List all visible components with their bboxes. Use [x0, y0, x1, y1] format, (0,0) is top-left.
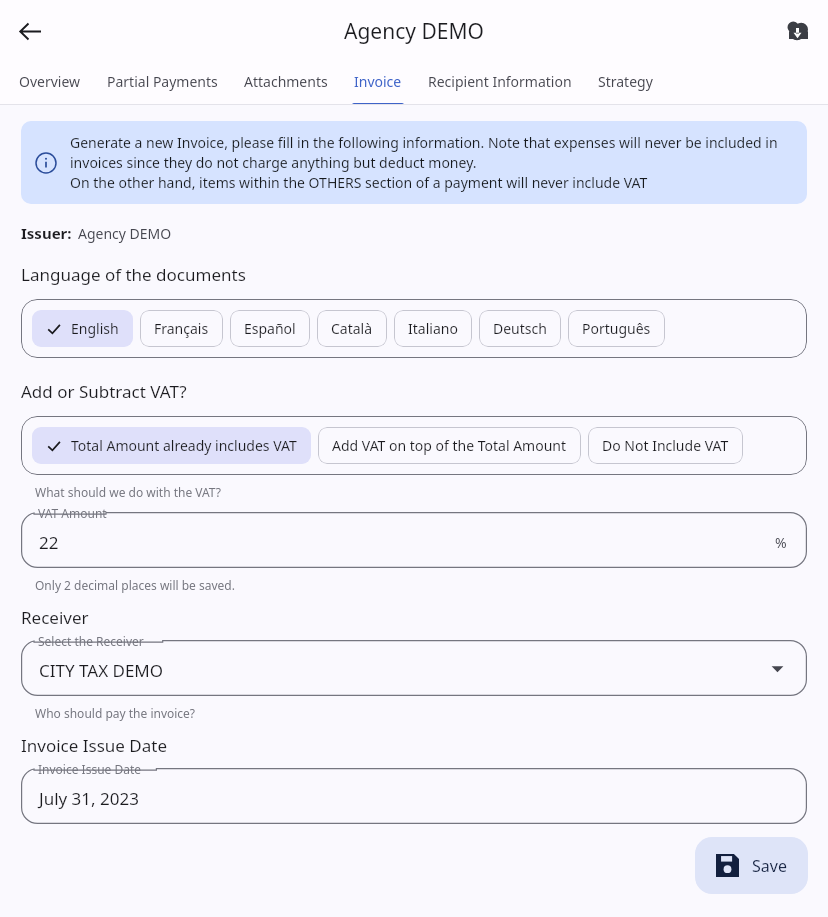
button[interactable]: Recipient Information: [415, 62, 585, 105]
staticText: Invoice Issue Date: [21, 734, 167, 757]
staticText: Recipient Information: [428, 72, 572, 91]
staticText: %: [775, 533, 787, 552]
staticText: Português: [582, 319, 651, 338]
staticText: Who should pay the invoice?: [35, 705, 196, 721]
staticText: Receiver: [21, 606, 89, 629]
button[interactable]: Deutsch: [479, 310, 561, 347]
staticText: Language of the documents: [21, 263, 246, 286]
button[interactable]: Italiano: [394, 310, 472, 347]
button[interactable]: Open dropdown: [762, 653, 792, 683]
button[interactable]: Save: [695, 837, 808, 894]
staticText: Add VAT on top of the Total Amount: [332, 436, 567, 455]
staticText: English: [71, 319, 119, 338]
button[interactable]: Overview: [6, 62, 94, 105]
button[interactable]: Invoice: [341, 62, 415, 105]
staticText: Issuer:: [21, 223, 72, 243]
staticText: Deutsch: [493, 319, 547, 338]
staticText: Only 2 decimal places will be saved.: [35, 577, 235, 593]
staticText: Español: [244, 319, 296, 338]
button[interactable]: Français: [140, 310, 223, 347]
staticText: Agency DEMO: [344, 17, 484, 46]
button[interactable]: Back: [6, 7, 54, 55]
button[interactable]: English: [32, 310, 133, 347]
staticText: July 31, 2023: [39, 787, 139, 810]
staticText: Overview: [19, 72, 81, 91]
staticText: Français: [154, 319, 209, 338]
staticText: Partial Payments: [107, 72, 218, 91]
staticText: 22: [39, 531, 59, 554]
staticText: Total Amount already includes VAT: [71, 436, 297, 455]
staticText: Attachments: [244, 72, 328, 91]
staticText: What should we do with the VAT?: [35, 484, 221, 500]
button[interactable]: Español: [230, 310, 310, 347]
staticText: Select the Receiver: [38, 633, 144, 649]
button[interactable]: Strategy: [585, 62, 666, 105]
staticText: Strategy: [598, 72, 653, 91]
staticText: Save: [752, 855, 787, 877]
staticText: Do Not Include VAT: [602, 436, 729, 455]
button[interactable]: Português: [568, 310, 665, 347]
button[interactable]: Add VAT on top of the Total Amount: [318, 427, 581, 464]
button[interactable]: Total Amount already includes VAT: [32, 427, 311, 464]
staticText: Add or Subtract VAT?: [21, 380, 187, 403]
button[interactable]: Download: [773, 7, 821, 55]
staticText: Generate a new Invoice, please fill in t…: [70, 133, 791, 192]
staticText: CITY TAX DEMO: [39, 659, 164, 682]
staticText: VAT Amount: [38, 505, 107, 521]
staticText: Invoice Issue Date: [38, 761, 142, 777]
button[interactable]: Attachments: [231, 62, 341, 105]
button[interactable]: Català: [317, 310, 387, 347]
button[interactable]: Do Not Include VAT: [588, 427, 743, 464]
staticText: Italiano: [408, 319, 458, 338]
staticText: Invoice: [354, 72, 402, 91]
staticText: Català: [331, 319, 373, 338]
staticText: Agency DEMO: [78, 224, 172, 243]
button[interactable]: Partial Payments: [94, 62, 231, 105]
